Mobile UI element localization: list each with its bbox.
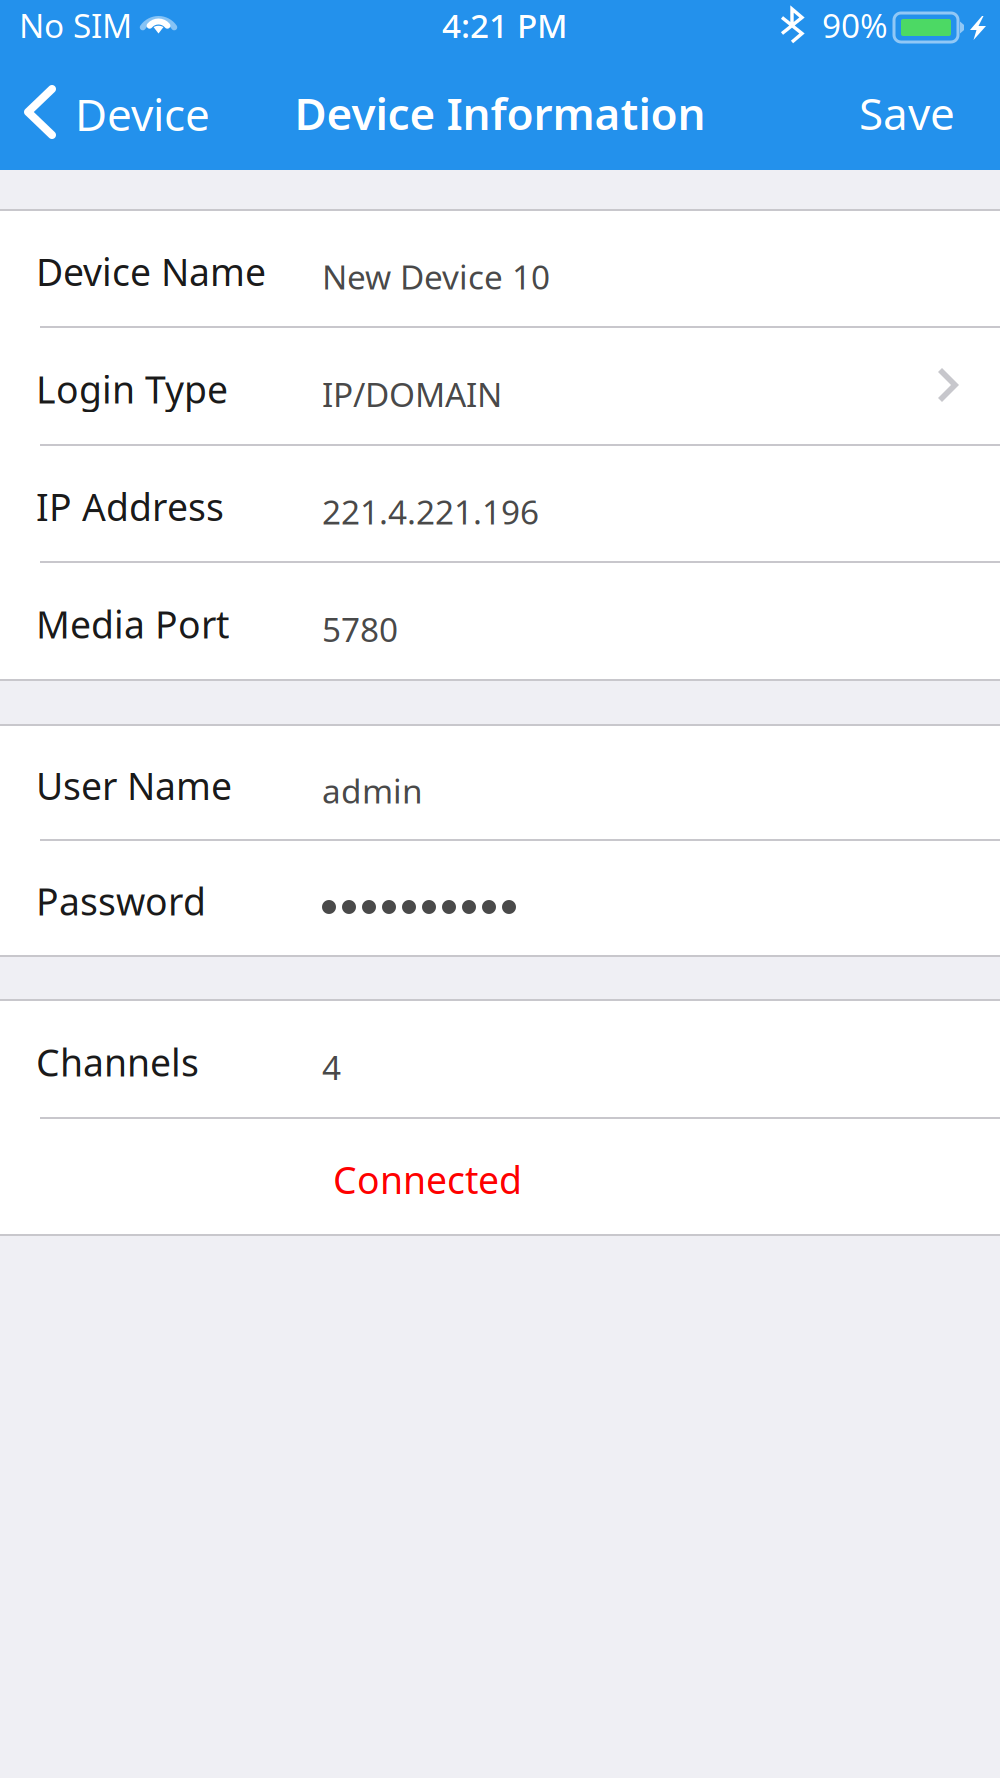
staticText: IP Address bbox=[36, 482, 224, 531]
button[interactable]: User Name bbox=[0, 726, 1000, 839]
staticText: 4 bbox=[322, 1045, 341, 1089]
staticText: 4:21 PM bbox=[442, 3, 568, 47]
staticText: 90% bbox=[822, 3, 888, 47]
staticText: Device Information bbox=[294, 84, 705, 142]
button[interactable]: Login Type bbox=[0, 328, 1000, 444]
button[interactable]: Device bbox=[0, 62, 230, 170]
button[interactable]: Device Name bbox=[0, 211, 1000, 326]
staticText: Connected bbox=[333, 1155, 522, 1204]
staticText: IP/DOMAIN bbox=[322, 372, 502, 416]
staticText: No SIM bbox=[19, 3, 132, 47]
button[interactable]: IP Address bbox=[0, 446, 1000, 561]
button[interactable]: Device Information bbox=[0, 59, 1000, 167]
staticText: New Device 10 bbox=[322, 254, 550, 299]
staticText: Device bbox=[75, 85, 210, 143]
staticText: 5780 bbox=[322, 607, 398, 651]
staticText: User Name bbox=[36, 761, 232, 810]
button[interactable]: Media Port bbox=[0, 563, 1000, 679]
staticText: Password bbox=[36, 876, 206, 926]
staticText: Channels bbox=[36, 1037, 199, 1087]
staticText: Login Type bbox=[36, 364, 228, 414]
button[interactable]: Save bbox=[819, 59, 1000, 167]
button[interactable]: Password bbox=[0, 841, 1000, 955]
button[interactable]: Channels bbox=[0, 1001, 1000, 1117]
staticText: 221.4.221.196 bbox=[322, 489, 539, 534]
staticText: Save bbox=[859, 84, 955, 142]
staticText: admin bbox=[322, 768, 423, 813]
staticText: Device Name bbox=[36, 247, 266, 296]
staticText: Media Port bbox=[36, 599, 229, 649]
